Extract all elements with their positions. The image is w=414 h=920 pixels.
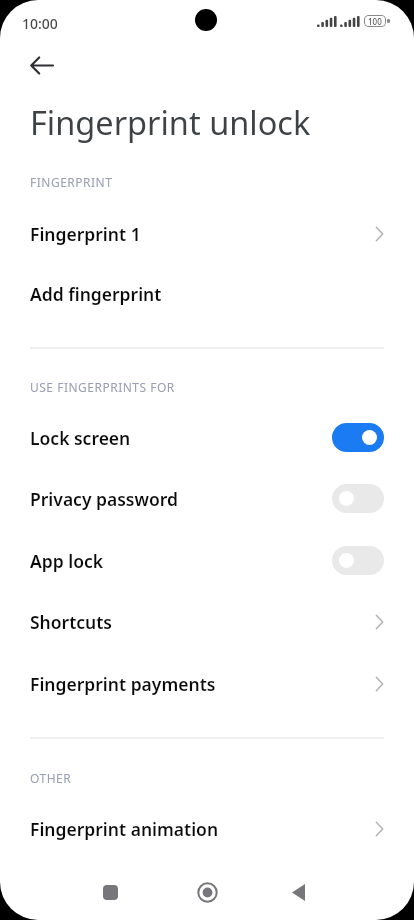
staticText: 100 <box>368 16 382 27</box>
button[interactable]: Shortcuts <box>0 591 414 652</box>
staticText: App lock <box>30 549 104 573</box>
staticText: Fingerprint animation <box>30 817 219 841</box>
staticText: USE FINGERPRINTS FOR <box>30 379 175 395</box>
button[interactable]: App lock <box>0 530 414 591</box>
button[interactable]: Fingerprint 1 <box>0 203 414 264</box>
staticText: OTHER <box>30 770 72 786</box>
button[interactable] <box>276 870 320 914</box>
staticText: Privacy password <box>30 487 179 511</box>
button[interactable]: Lock screen <box>0 407 414 468</box>
staticText: FINGERPRINT <box>30 174 113 190</box>
staticText: 10:00 <box>22 14 58 33</box>
staticText: Lock screen <box>30 426 131 450</box>
button[interactable] <box>185 870 229 914</box>
button[interactable]: Fingerprint animation <box>0 798 414 859</box>
button[interactable] <box>19 43 63 87</box>
staticText: Fingerprint unlock <box>30 100 311 144</box>
staticText: Fingerprint payments <box>30 672 216 696</box>
button[interactable] <box>332 423 384 452</box>
button[interactable]: Fingerprint payments <box>0 653 414 714</box>
button[interactable] <box>332 484 384 513</box>
button[interactable]: Privacy password <box>0 468 414 529</box>
button[interactable] <box>332 546 384 575</box>
staticText: Fingerprint 1 <box>30 222 141 246</box>
staticText: Shortcuts <box>30 610 112 634</box>
button[interactable]: Add fingerprint <box>0 263 414 324</box>
staticText: Add fingerprint <box>30 282 162 306</box>
button[interactable] <box>88 870 132 914</box>
